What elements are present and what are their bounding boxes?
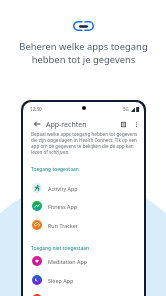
button[interactable]: Back: [31, 118, 43, 130]
staticText: Bepaal welke apps toegang hebben tot geg…: [31, 131, 139, 155]
staticText: 5G: [123, 106, 129, 112]
button[interactable]: Activity App: [23, 180, 144, 196]
button[interactable]: Run Tracker: [23, 217, 144, 233]
staticText: Toegang toegestaan: [31, 166, 79, 173]
staticText: Sleep App: [48, 277, 74, 284]
button[interactable]: Fitness App: [23, 198, 144, 214]
staticText: Fitness App: [48, 203, 78, 210]
staticText: 12:30: [30, 106, 42, 112]
button[interactable]: Sleep App: [23, 272, 144, 288]
button[interactable]: Help: [117, 118, 129, 130]
staticText: Meditation App: [48, 258, 88, 265]
button[interactable]: More options: [130, 118, 142, 130]
button[interactable]: Meditation App: [23, 253, 144, 269]
staticText: Run Tracker: [48, 222, 79, 229]
staticText: App-rechten: [46, 120, 87, 130]
staticText: Activity App: [48, 185, 78, 192]
staticText: Toegang niet toegestaan: [31, 245, 90, 252]
button[interactable]: [23, 291, 144, 296]
staticText: Beheren welke apps toegang hebben tot je…: [19, 40, 148, 66]
